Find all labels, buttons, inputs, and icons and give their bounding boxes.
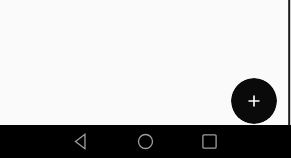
button[interactable] [0, 0, 291, 158]
button[interactable]: Add [231, 78, 277, 124]
